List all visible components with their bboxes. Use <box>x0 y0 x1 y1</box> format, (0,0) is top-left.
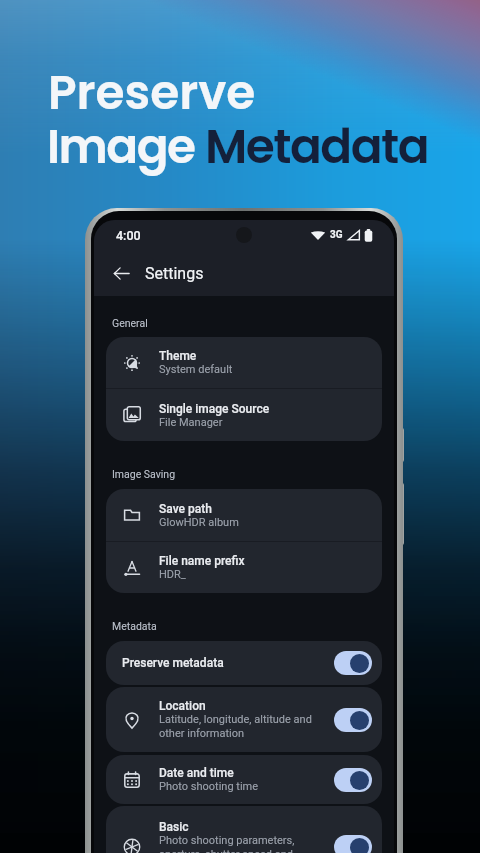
button[interactable]: Date and time <box>106 755 382 804</box>
staticText: 4:00 <box>116 228 141 243</box>
staticText: General <box>112 317 148 329</box>
staticText: Metadata <box>205 114 429 180</box>
staticText: Location <box>159 699 206 713</box>
staticText: GlowHDR album <box>159 516 239 529</box>
button[interactable]: Basic <box>106 806 382 853</box>
button[interactable]: File name prefix <box>106 542 382 593</box>
button[interactable]: Location <box>106 687 382 752</box>
staticText: Preserve metadata <box>122 656 224 670</box>
staticText: Image <box>47 114 205 180</box>
staticText: File name prefix <box>159 554 245 568</box>
staticText: Single image Source <box>159 402 270 416</box>
button[interactable]: Toggle <box>334 768 372 792</box>
staticText: Image Saving <box>112 468 176 480</box>
staticText: Photo shooting time <box>159 780 259 793</box>
staticText: File Manager <box>159 416 223 429</box>
staticText: Preserve <box>48 60 256 126</box>
staticText: HDR_ <box>159 568 186 581</box>
button[interactable]: Theme <box>106 337 382 388</box>
button[interactable]: Toggle <box>334 651 372 675</box>
staticText: Date and time <box>159 766 234 780</box>
button[interactable]: Toggle <box>334 835 372 853</box>
staticText: Latitude, longitude, altitude and other … <box>159 713 312 740</box>
button[interactable]: Back <box>106 258 136 288</box>
staticText: Basic <box>159 820 189 834</box>
button[interactable]: Preserve metadata <box>106 641 382 685</box>
staticText: Metadata <box>112 620 157 632</box>
button[interactable]: Single image Source <box>106 389 382 441</box>
button[interactable]: Save path <box>106 489 382 541</box>
staticText: System default <box>159 363 233 376</box>
staticText: Theme <box>159 349 197 363</box>
staticText: Settings <box>145 264 204 283</box>
staticText: Save path <box>159 502 212 516</box>
button[interactable]: Toggle <box>334 708 372 732</box>
staticText: 3G <box>330 229 343 241</box>
staticText: Photo shooting parameters, aperture, shu… <box>159 834 295 853</box>
